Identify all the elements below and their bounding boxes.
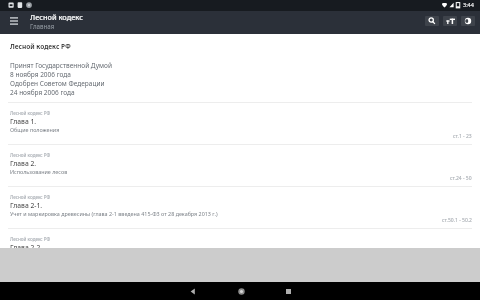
- button[interactable]: Home: [224, 282, 258, 300]
- staticText: Одобрен Советом Федерации: [10, 79, 105, 88]
- button[interactable]: Text size: [443, 16, 457, 26]
- staticText: Лесной кодекс РФ: [10, 194, 51, 200]
- staticText: Принят Государственной Думой: [10, 61, 112, 70]
- staticText: Лесной кодекс: [30, 12, 83, 22]
- staticText: Лесной кодекс РФ: [10, 236, 51, 242]
- button[interactable]: Search: [425, 16, 439, 26]
- staticText: Учет и маркировка древесины (глава 2-1 в…: [10, 210, 218, 217]
- staticText: Глава 1.: [10, 117, 37, 126]
- button[interactable]: Invert colors: [461, 16, 475, 26]
- staticText: Глава 2.: [10, 159, 37, 168]
- staticText: 8 ноября 2006 года: [10, 70, 71, 79]
- staticText: Главная: [30, 22, 55, 30]
- staticText: Лесной кодекс РФ: [10, 42, 71, 51]
- staticText: Лесной кодекс РФ: [10, 110, 51, 116]
- button[interactable]: Лесной кодекс РФ: [0, 229, 480, 248]
- staticText: Использование лесов: [10, 168, 68, 175]
- staticText: Лесной кодекс РФ: [10, 152, 51, 158]
- button[interactable]: Recent apps: [271, 282, 305, 300]
- button[interactable]: Open navigation menu: [5, 17, 17, 29]
- button[interactable]: Лесной кодекс РФ: [0, 103, 480, 144]
- button[interactable]: Лесной кодекс РФ: [0, 187, 480, 228]
- staticText: ст.1 - 23: [453, 133, 472, 140]
- staticText: Глава 2-2.: [10, 243, 43, 248]
- button[interactable]: Лесной кодекс РФ: [0, 145, 480, 186]
- staticText: Глава 2-1.: [10, 201, 43, 210]
- staticText: 3:44: [463, 1, 474, 8]
- staticText: ст.24 - 50: [450, 175, 472, 182]
- button[interactable]: Back: [176, 282, 210, 300]
- staticText: ст.50.1 - 50.2: [442, 217, 472, 224]
- staticText: 24 ноября 2006 года: [10, 88, 75, 97]
- staticText: Общие положения: [10, 126, 60, 133]
